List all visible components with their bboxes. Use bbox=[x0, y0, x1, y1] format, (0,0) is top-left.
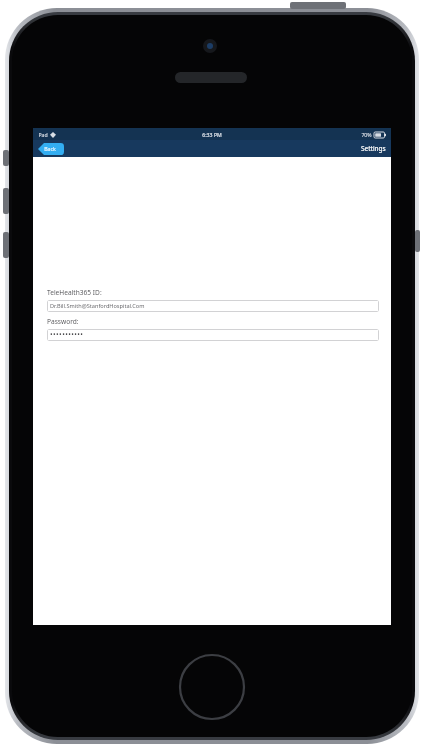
staticText: 6:33 PM bbox=[202, 131, 222, 138]
button[interactable]: Dr.Bill.Smith@StanfordHospital.Com bbox=[47, 300, 379, 312]
button[interactable] bbox=[38, 143, 64, 155]
staticText: Pad bbox=[38, 131, 48, 138]
staticText: TeleHealth365 ID: bbox=[47, 288, 102, 297]
button[interactable]: ••••••••••• bbox=[47, 329, 379, 341]
staticText: Password: bbox=[47, 317, 79, 326]
staticText: Back bbox=[44, 145, 56, 152]
button[interactable]: Settings bbox=[356, 142, 391, 155]
staticText: 70% bbox=[361, 131, 372, 138]
staticText: ••••••••••• bbox=[50, 330, 84, 340]
staticText: Settings bbox=[361, 144, 386, 153]
staticText: Dr.Bill.Smith@StanfordHospital.Com bbox=[50, 302, 145, 310]
